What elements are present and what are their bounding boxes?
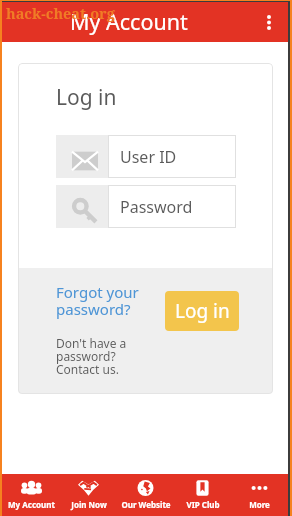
staticText: VIP Club [186,499,220,510]
staticText: Password [120,196,193,218]
staticText: Don't have a password? Contact us. [56,335,127,377]
button[interactable]: Password [56,185,236,228]
staticText: More [249,499,270,510]
button[interactable]: VIP Club [174,474,231,516]
button[interactable]: My Account [2,474,60,516]
staticText: User ID [120,146,177,168]
staticText: My Account [8,499,55,510]
button[interactable]: Join Now [60,474,117,516]
button[interactable]: More options [256,9,282,35]
staticText: Our Website [121,499,171,510]
button[interactable]: User ID [56,135,236,178]
button[interactable]: Forgot your password? [56,282,139,320]
staticText: My Account [70,7,188,36]
staticText: hack-cheat.org [6,3,115,23]
button[interactable]: More [231,474,288,516]
staticText: Log in [56,83,117,112]
button[interactable]: Log in [165,291,239,331]
button[interactable]: Our Website [117,474,174,516]
staticText: Log in [175,298,230,324]
staticText: Join Now [71,499,107,510]
